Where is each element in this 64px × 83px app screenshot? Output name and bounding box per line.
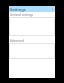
button[interactable] [9,43,55,59]
staticText: Settings [10,7,26,12]
button[interactable]: More [50,7,54,11]
button[interactable] [9,17,55,36]
staticText: Advanced [10,39,24,43]
staticText: General settings [10,13,34,17]
staticText: ⋮ [50,7,54,11]
